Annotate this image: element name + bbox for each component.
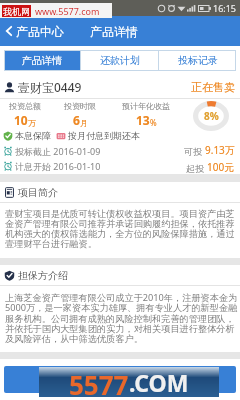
staticText: 按月付息到期还本 xyxy=(68,130,140,141)
staticText: 预计年化收益 xyxy=(122,101,170,111)
staticText: 产品中心 xyxy=(16,24,64,39)
staticText: www.5577.com xyxy=(35,5,100,17)
staticText: 壹财宝0449 xyxy=(18,79,82,95)
staticText: 本息保障 xyxy=(15,130,51,141)
staticText: 可投 xyxy=(184,145,205,157)
staticText: 产品详情 xyxy=(22,54,62,67)
staticText: 起投 xyxy=(186,162,207,174)
staticText: 我机网 xyxy=(3,6,30,17)
staticText: 投资总额 xyxy=(9,101,41,111)
button[interactable]: 还款计划 xyxy=(81,50,158,71)
staticText: 投标截止 2016-01-09 xyxy=(15,145,101,157)
button[interactable]: 投标记录 xyxy=(159,50,236,71)
staticText: 5577 xyxy=(69,367,129,397)
staticText: 6 xyxy=(73,112,80,128)
staticText: 13 xyxy=(136,112,150,128)
staticText: 9.13万 xyxy=(205,143,235,157)
staticText: 投资时限 xyxy=(64,101,96,111)
staticText: 还款计划 xyxy=(100,54,140,67)
button[interactable]: 立即投资 xyxy=(4,366,236,393)
staticText: 16:15 xyxy=(213,2,237,14)
staticText: 100元 xyxy=(207,160,235,174)
staticText: % xyxy=(150,117,157,128)
staticText: 立即投资 xyxy=(94,372,146,388)
staticText: 投标记录 xyxy=(178,54,218,67)
staticText: 壹财宝项目是优质可转让债权收益权项目。项目资产由芝金资产管理有限公司推荐并承诺回… xyxy=(5,208,239,249)
staticText: 计息开始 2016-01-10 xyxy=(15,160,101,172)
staticText: 万 xyxy=(28,118,36,128)
staticText: 上海芝金资产管理有限公司成立于2010年，注册资本金为5000万，是一家资本实力… xyxy=(5,291,239,344)
staticText: 8% xyxy=(204,109,219,123)
button[interactable]: 产品详情 xyxy=(4,50,80,71)
button[interactable]: 产品中心 xyxy=(0,16,70,46)
staticText: 10 xyxy=(14,112,28,128)
staticText: 产品详情 xyxy=(90,24,138,39)
staticText: 月 xyxy=(80,118,88,128)
staticText: 担保方介绍 xyxy=(18,269,68,282)
staticText: .COM xyxy=(129,367,189,397)
staticText: 项目简介 xyxy=(18,186,58,199)
staticText: 正在售卖 xyxy=(191,80,235,94)
